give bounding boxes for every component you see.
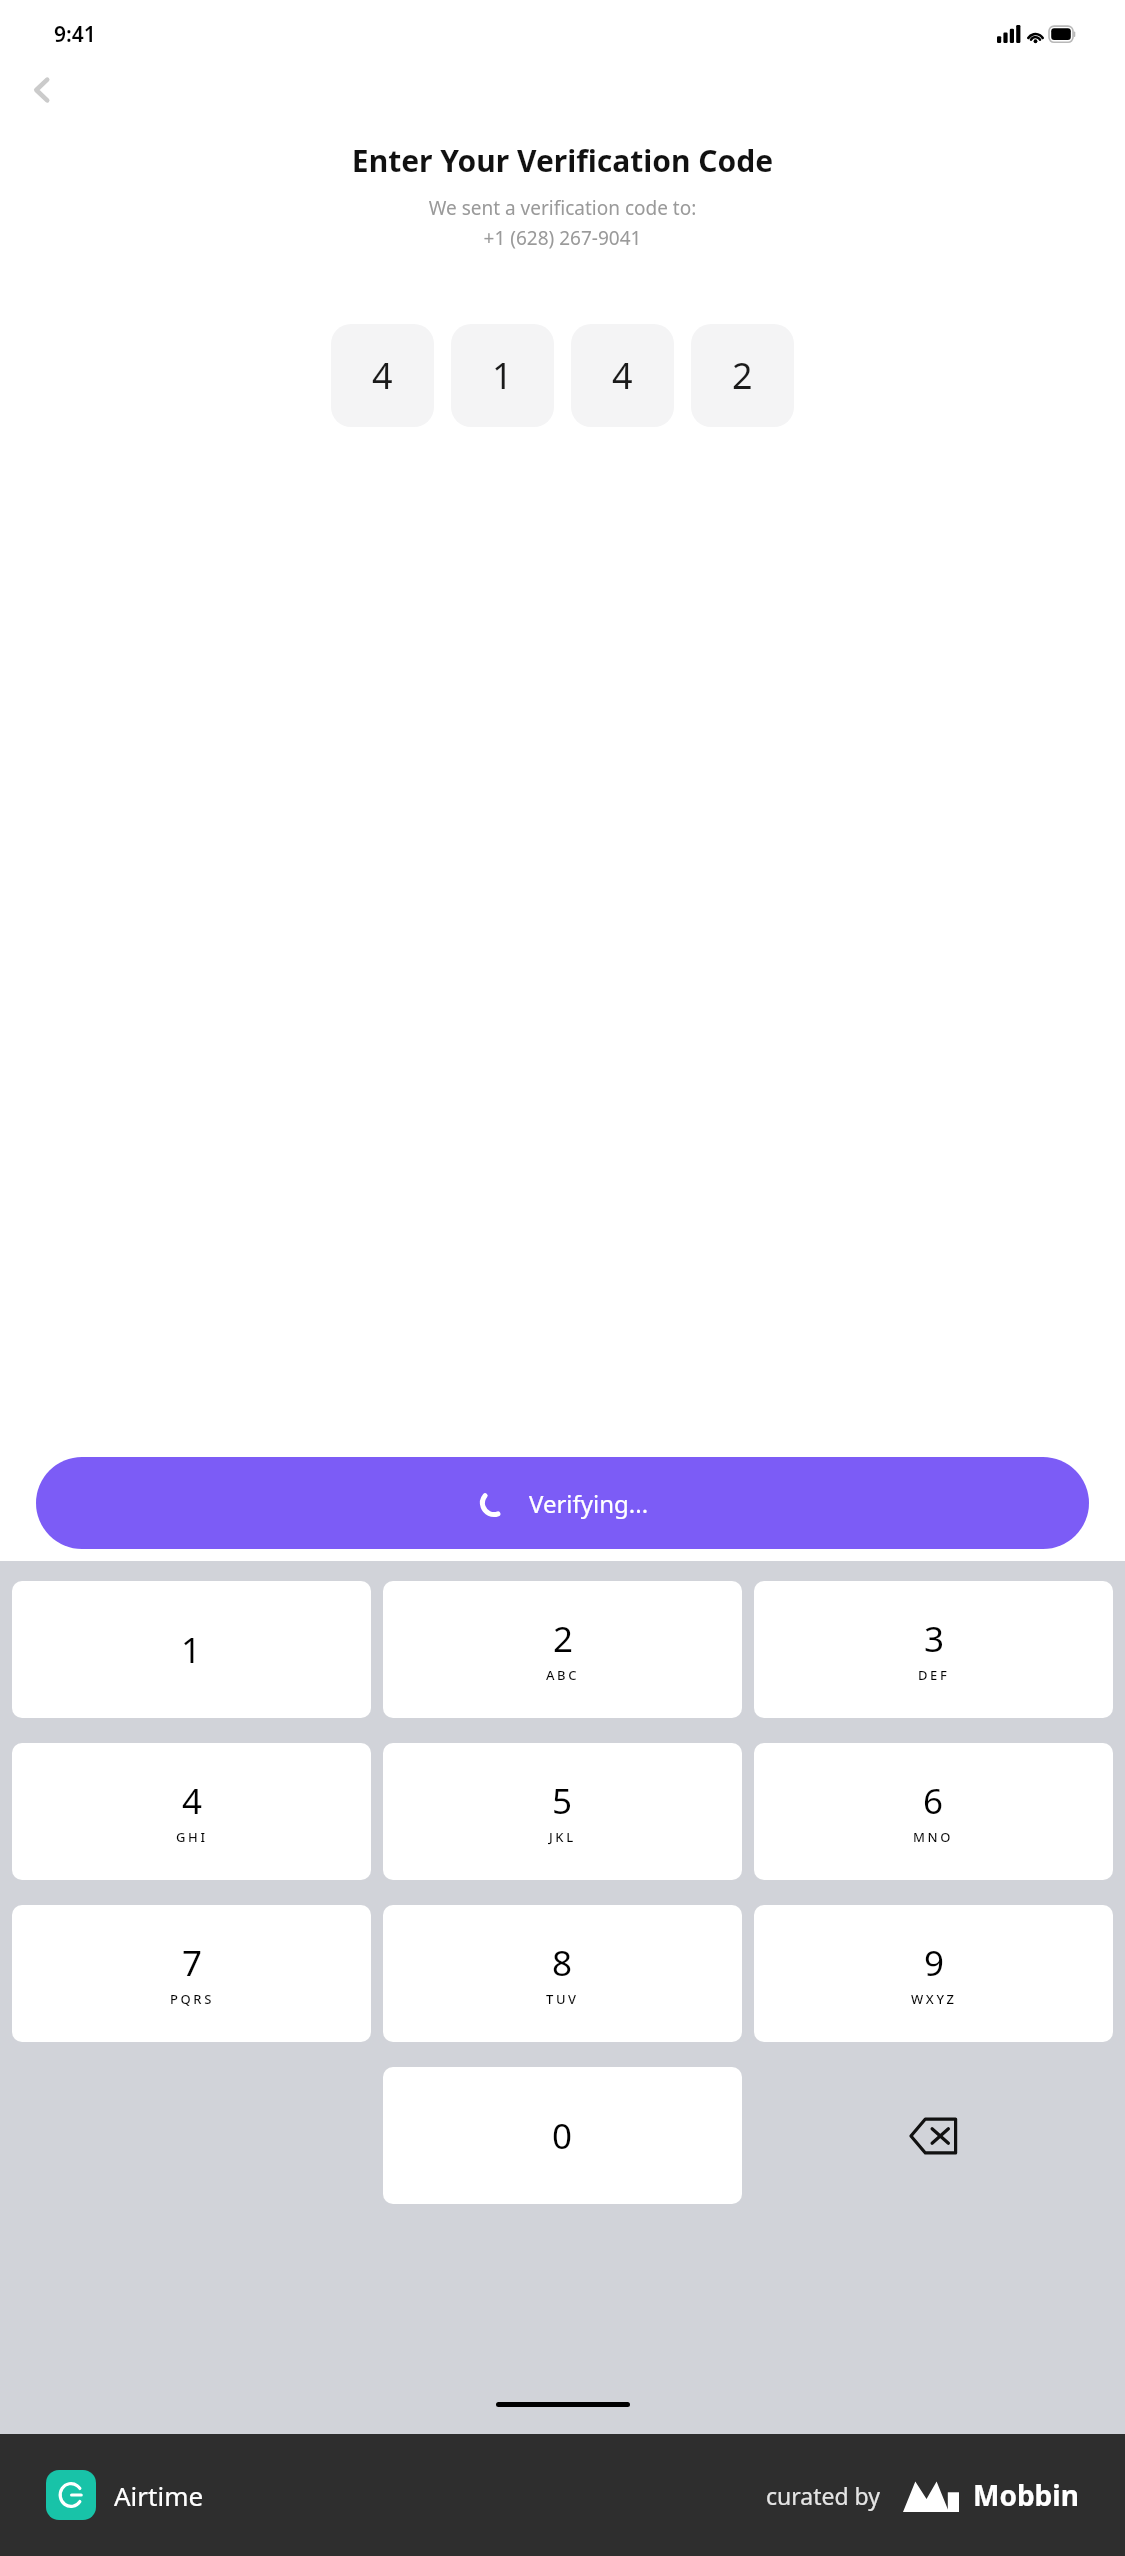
staticText: Mobbin (973, 2476, 1079, 2514)
staticText: JKL (549, 1828, 576, 1846)
staticText: Airtime (114, 2478, 204, 2513)
staticText: 4 (182, 1777, 203, 1825)
staticText: DEF (918, 1666, 950, 1684)
button[interactable]: 0 (383, 2067, 742, 2204)
button[interactable]: 3 (754, 1581, 1113, 1718)
staticText: 9:41 (54, 20, 96, 49)
button[interactable]: 5 (383, 1743, 742, 1880)
staticText: 8 (552, 1939, 573, 1987)
staticText: MNO (913, 1828, 954, 1846)
button[interactable]: 1 (12, 1581, 371, 1718)
staticText: WXYZ (911, 1990, 957, 2008)
staticText: We sent a verification code to: (0, 195, 1125, 221)
button[interactable]: 4 (331, 324, 434, 427)
button[interactable]: 2 (691, 324, 794, 427)
button[interactable]: Back (14, 62, 70, 118)
button[interactable]: 2 (383, 1581, 742, 1718)
staticText: 4 (612, 351, 633, 400)
staticText: GHI (176, 1828, 208, 1846)
staticText: ABC (546, 1666, 580, 1684)
staticText: Enter Your Verification Code (0, 140, 1125, 181)
staticText: 6 (923, 1777, 944, 1825)
staticText: 1 (492, 351, 513, 400)
staticText: Verifying... (529, 1487, 649, 1520)
staticText: 2 (732, 351, 753, 400)
button[interactable]: Backspace (748, 2067, 1119, 2204)
staticText: 2 (553, 1615, 574, 1663)
staticText: curated by (766, 2480, 881, 2511)
staticText: 5 (552, 1777, 573, 1825)
button[interactable]: 4 (571, 324, 674, 427)
staticText: TUV (546, 1990, 579, 2008)
staticText: 1 (181, 1626, 202, 1674)
button[interactable]: 6 (754, 1743, 1113, 1880)
staticText: +1 (628) 267-9041 (0, 225, 1125, 251)
staticText: 3 (924, 1615, 945, 1663)
staticText: 7 (182, 1939, 203, 1987)
staticText: 0 (552, 2112, 573, 2160)
staticText: 4 (372, 351, 393, 400)
staticText: PQRS (170, 1990, 214, 2008)
button[interactable]: 1 (451, 324, 554, 427)
button[interactable]: 8 (383, 1905, 742, 2042)
staticText: 9 (924, 1939, 945, 1987)
button[interactable]: 7 (12, 1905, 371, 2042)
button[interactable]: Verifying... (36, 1457, 1089, 1549)
button[interactable]: 4 (12, 1743, 371, 1880)
button[interactable]: 9 (754, 1905, 1113, 2042)
